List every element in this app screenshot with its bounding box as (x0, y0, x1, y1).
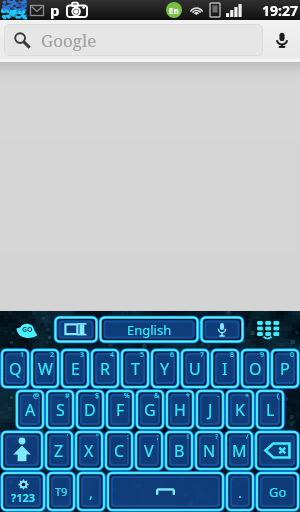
staticText: & (154, 391, 160, 401)
button[interactable]: X (74, 430, 104, 471)
button[interactable]: Q (0, 348, 30, 389)
staticText: 3 (80, 350, 85, 360)
staticText: S (56, 399, 65, 421)
button[interactable]: T9 (46, 471, 76, 512)
staticText: " (96, 432, 99, 442)
staticText: $ (95, 391, 100, 401)
button[interactable]: K (225, 389, 255, 430)
button[interactable]: , (76, 471, 106, 512)
staticText: ( (277, 391, 280, 401)
staticText: 0 (290, 350, 295, 360)
staticText: R (100, 358, 110, 380)
staticText: Z (54, 440, 64, 462)
staticText: / (246, 432, 249, 442)
staticText: - (217, 391, 220, 401)
staticText: ' (67, 432, 69, 442)
staticText: # (65, 391, 70, 401)
staticText: D (84, 399, 96, 421)
button[interactable]: Google (4, 24, 263, 56)
staticText: 4 (110, 350, 115, 360)
staticText: 6 (170, 350, 175, 360)
staticText: : (127, 432, 129, 442)
staticText: ! (187, 432, 189, 442)
button[interactable]: Y (150, 348, 180, 389)
staticText: p (50, 0, 60, 20)
staticText: Go (269, 483, 287, 501)
button[interactable]: . (225, 471, 255, 512)
button[interactable]: C (104, 430, 134, 471)
staticText: O (249, 358, 262, 380)
button[interactable]: E (60, 348, 90, 389)
staticText: En (169, 5, 179, 16)
button[interactable]: English (99, 316, 199, 343)
staticText: E (71, 358, 80, 380)
staticText: * (186, 391, 190, 401)
staticText: 19:27 (262, 1, 298, 20)
button[interactable]: N (194, 430, 224, 471)
button[interactable]: T (120, 348, 150, 389)
staticText: X (84, 440, 94, 462)
staticText: Y (160, 358, 170, 380)
button[interactable]: A (15, 389, 45, 430)
staticText: 2 (50, 350, 55, 360)
staticText: 7 (200, 350, 205, 360)
staticText: GO (22, 325, 33, 335)
button[interactable]: D (75, 389, 105, 430)
button[interactable]: W (30, 348, 60, 389)
button[interactable]: O (240, 348, 270, 389)
staticText: U (189, 358, 201, 380)
button[interactable]: Space (106, 471, 225, 512)
button[interactable]: R (90, 348, 120, 389)
staticText: . (238, 482, 243, 502)
staticText: 9 (260, 350, 265, 360)
button[interactable]: M (224, 430, 254, 471)
staticText: A (25, 399, 36, 421)
button[interactable]: Voice search (263, 24, 300, 56)
button[interactable]: G (135, 389, 165, 430)
staticText: W (38, 358, 53, 380)
staticText: @ (33, 391, 40, 401)
button[interactable]: P (270, 348, 300, 389)
staticText: , (89, 482, 94, 502)
staticText: P (280, 358, 290, 380)
button[interactable]: Keyboard settings (247, 311, 287, 348)
button[interactable]: Voice input (200, 316, 244, 343)
staticText: F (116, 399, 125, 421)
button[interactable]: B (164, 430, 194, 471)
staticText: Q (9, 358, 22, 380)
staticText: G (144, 399, 156, 421)
staticText: I (222, 358, 228, 380)
staticText: M (232, 440, 247, 462)
button[interactable]: L (255, 389, 285, 430)
staticText: B (174, 440, 185, 462)
staticText: T (131, 358, 140, 380)
staticText: ; (157, 432, 159, 442)
button[interactable]: Switch input mode (54, 316, 98, 343)
staticText: V (144, 440, 154, 462)
button[interactable]: Shift (0, 430, 44, 471)
button[interactable]: I (210, 348, 240, 389)
staticText: J (208, 399, 213, 421)
staticText: L (266, 399, 275, 421)
button[interactable]: U (180, 348, 210, 389)
staticText: 5 (140, 350, 145, 360)
staticText: ?123 (11, 490, 36, 505)
button[interactable]: GO Keyboard logo (0, 311, 53, 348)
staticText: K (235, 399, 245, 421)
button[interactable]: Backspace (254, 430, 300, 471)
button[interactable]: H (165, 389, 195, 430)
staticText: 1 (20, 350, 25, 360)
staticText: Google (41, 29, 97, 52)
button[interactable]: J (195, 389, 225, 430)
staticText: English (127, 321, 172, 339)
staticText: ? (215, 432, 219, 442)
button[interactable]: Go (255, 471, 300, 512)
staticText: 8 (230, 350, 235, 360)
button[interactable]: ?123 (0, 471, 46, 512)
staticText: H (174, 399, 186, 421)
button[interactable]: S (45, 389, 75, 430)
button[interactable]: Z (44, 430, 74, 471)
button[interactable]: V (134, 430, 164, 471)
staticText: + (245, 391, 250, 401)
button[interactable]: F (105, 389, 135, 430)
